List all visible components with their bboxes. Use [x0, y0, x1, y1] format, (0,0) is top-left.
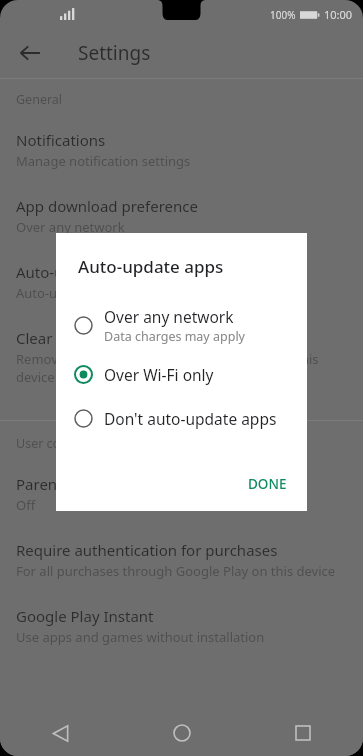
button[interactable]: DONE: [236, 467, 299, 501]
staticText: Use apps and games without installation: [16, 628, 265, 646]
staticText: User controls: [16, 435, 95, 452]
staticText: Remove the searches you have performed o…: [16, 350, 347, 386]
staticText: App download preference: [16, 196, 198, 216]
staticText: Auto-update apps: [78, 255, 224, 278]
staticText: Over Wi-Fi only: [104, 364, 214, 385]
button[interactable]: Parental controls: [0, 474, 363, 540]
staticText: For all purchases through Google Play on…: [16, 562, 336, 580]
staticText: Parental controls: [16, 474, 136, 494]
button[interactable]: Require authentication for purchases: [0, 540, 363, 606]
button[interactable]: Clear local search history: [0, 328, 363, 412]
button[interactable]: Home: [121, 710, 242, 756]
staticText: Off: [16, 496, 36, 514]
staticText: 100%: [270, 8, 296, 22]
button[interactable]: Back: [0, 710, 121, 756]
staticText: Over any network: [16, 218, 125, 236]
staticText: Require authentication for purchases: [16, 540, 278, 560]
staticText: DONE: [248, 475, 287, 493]
button[interactable]: Back: [8, 31, 52, 75]
button[interactable]: App download preference: [0, 196, 363, 262]
button[interactable]: Google Play Instant: [0, 606, 363, 672]
button[interactable]: Over Wi-Fi only: [56, 352, 307, 396]
staticText: Manage notification settings: [16, 152, 191, 170]
staticText: Auto-update apps: [16, 262, 143, 282]
staticText: General: [16, 91, 63, 108]
staticText: Settings: [78, 40, 151, 66]
staticText: Over any network: [104, 306, 234, 327]
staticText: Auto-update apps over Wi-Fi only: [16, 284, 218, 302]
button[interactable]: Notifications: [0, 130, 363, 196]
button[interactable]: Over any network: [56, 298, 307, 352]
staticText: Notifications: [16, 130, 106, 150]
button[interactable]: Recents: [242, 710, 363, 756]
staticText: Clear local search history: [16, 328, 192, 348]
staticText: Don't auto-update apps: [104, 408, 277, 429]
button[interactable]: Auto-update apps: [0, 262, 363, 328]
staticText: Google Play Instant: [16, 606, 154, 626]
staticText: 10:00: [324, 7, 353, 22]
button[interactable]: Don't auto-update apps: [56, 396, 307, 440]
staticText: Data charges may apply: [104, 328, 245, 345]
